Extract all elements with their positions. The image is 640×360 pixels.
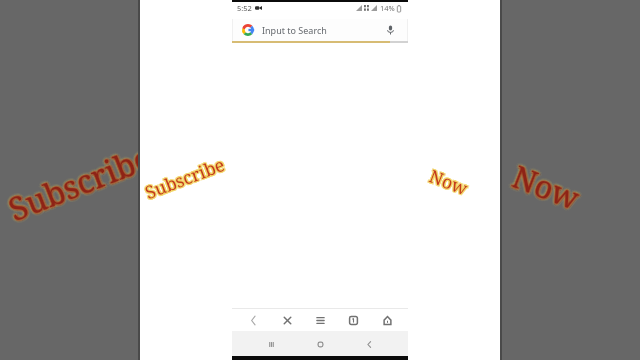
staticText: Subscribe: [2, 136, 157, 232]
staticText: Now: [505, 156, 585, 219]
staticText: Now: [506, 152, 585, 216]
staticText: Now: [426, 165, 472, 201]
staticText: Now: [426, 163, 472, 199]
staticText: Now: [507, 154, 587, 218]
staticText: Subscribe: [5, 136, 160, 232]
staticText: Subscribe: [141, 152, 228, 204]
staticText: Now: [506, 154, 586, 218]
staticText: Now: [510, 156, 589, 220]
button[interactable]: Back: [357, 333, 381, 355]
staticText: Now: [507, 156, 587, 220]
staticText: Now: [427, 163, 473, 200]
staticText: Subscribe: [2, 134, 157, 230]
staticText: Now: [425, 163, 471, 200]
staticText: Subscribe: [2, 135, 158, 231]
staticText: Now: [506, 154, 586, 218]
staticText: Now: [426, 165, 472, 201]
staticText: Subscribe: [3, 135, 159, 231]
staticText: Subscribe: [2, 136, 158, 232]
staticText: Subscribe: [0, 134, 155, 230]
staticText: Subscribe: [141, 153, 228, 205]
staticText: Subscribe: [3, 132, 159, 228]
staticText: Subscribe: [5, 134, 161, 230]
button[interactable]: Input to Search: [232, 19, 408, 41]
button[interactable]: Menu: [308, 309, 332, 331]
staticText: Now: [426, 164, 472, 200]
staticText: Subscribe: [2, 134, 157, 230]
staticText: Now: [508, 154, 588, 218]
staticText: Subscribe: [3, 134, 158, 230]
staticText: Now: [426, 163, 472, 199]
staticText: Now: [504, 154, 583, 218]
staticText: Subscribe: [142, 151, 229, 204]
staticText: Subscribe: [141, 153, 228, 205]
staticText: Now: [506, 157, 585, 221]
staticText: Subscribe: [140, 151, 227, 204]
staticText: Subscribe: [141, 151, 228, 203]
staticText: Subscribe: [3, 136, 159, 231]
staticText: Now: [506, 155, 585, 219]
button[interactable]: Home: [308, 333, 332, 355]
staticText: Now: [508, 152, 587, 216]
staticText: Subscribe: [142, 153, 229, 205]
staticText: 5:52: [237, 3, 252, 13]
staticText: Now: [427, 164, 473, 201]
button[interactable]: Close tab: [275, 309, 299, 331]
staticText: Now: [427, 165, 472, 202]
staticText: Now: [425, 162, 471, 199]
staticText: Now: [427, 163, 473, 200]
staticText: Now: [508, 154, 588, 218]
staticText: Subscribe: [141, 152, 228, 205]
staticText: Now: [425, 162, 471, 199]
staticText: Input to Search: [262, 24, 327, 36]
staticText: Subscribe: [142, 150, 229, 203]
button[interactable]: Recent apps: [259, 333, 283, 355]
staticText: Now: [509, 156, 588, 220]
staticText: Now: [509, 154, 589, 218]
staticText: Now: [425, 163, 471, 200]
staticText: Subscribe: [1, 138, 157, 233]
staticText: Now: [427, 165, 472, 202]
staticText: Subscribe: [3, 138, 159, 234]
staticText: Now: [507, 155, 586, 219]
staticText: Subscribe: [1, 134, 157, 230]
staticText: Now: [427, 164, 473, 201]
staticText: Subscribe: [142, 150, 229, 203]
staticText: Now: [504, 156, 584, 220]
staticText: Now: [506, 155, 585, 219]
staticText: Subscribe: [1, 135, 157, 231]
staticText: 14%: [380, 3, 395, 13]
staticText: Subscribe: [3, 136, 159, 231]
staticText: Now: [506, 158, 585, 222]
staticText: Now: [425, 164, 471, 201]
staticText: Subscribe: [4, 134, 160, 230]
staticText: Subscribe: [1, 135, 157, 231]
staticText: Now: [425, 164, 471, 201]
staticText: Subscribe: [143, 152, 230, 205]
staticText: Subscribe: [3, 134, 158, 230]
staticText: Now: [508, 158, 587, 221]
staticText: Subscribe: [1, 134, 157, 230]
staticText: Now: [506, 156, 586, 220]
staticText: Subscribe: [142, 153, 229, 205]
staticText: Subscribe: [140, 151, 227, 204]
staticText: Subscribe: [3, 137, 159, 233]
staticText: Subscribe: [0, 136, 155, 232]
staticText: Subscribe: [143, 152, 230, 205]
staticText: Subscribe: [141, 151, 228, 203]
staticText: Subscribe: [142, 151, 229, 204]
staticText: Now: [507, 156, 587, 220]
staticText: Now: [505, 156, 585, 219]
button[interactable]: Back: [241, 309, 265, 331]
button[interactable]: Tabs: [341, 309, 365, 331]
staticText: Subscribe: [2, 136, 157, 232]
staticText: Now: [507, 154, 587, 218]
staticText: Subscribe: [141, 152, 228, 205]
button[interactable]: Home: [375, 309, 399, 331]
staticText: Subscribe: [1, 132, 157, 228]
staticText: Now: [508, 155, 587, 219]
